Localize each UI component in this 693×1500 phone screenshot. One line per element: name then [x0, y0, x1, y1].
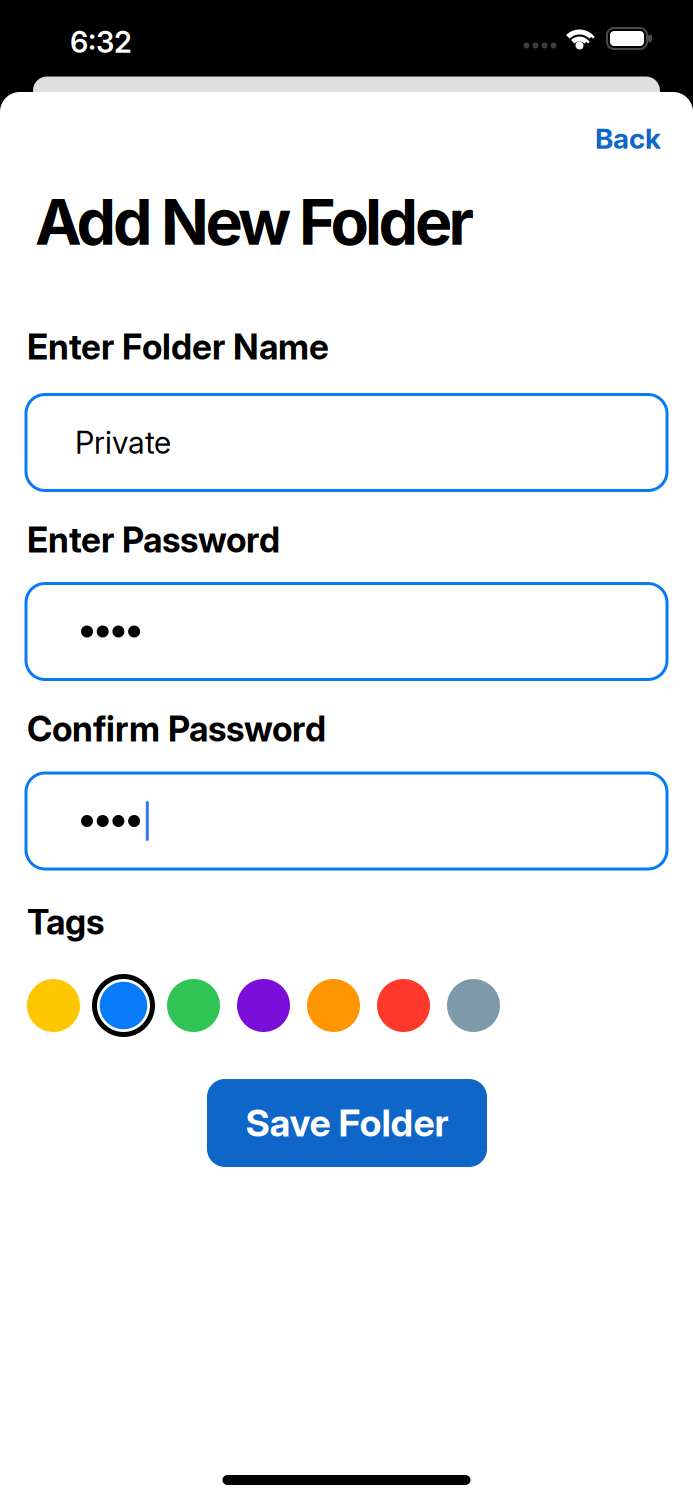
- staticText: Back: [595, 122, 661, 155]
- staticText: Confirm Password: [27, 709, 326, 749]
- button[interactable]: Green tag: [167, 979, 220, 1032]
- staticText: Enter Folder Name: [27, 327, 329, 367]
- button[interactable]: Password text field: [26, 583, 667, 679]
- button[interactable]: Red tag: [377, 979, 430, 1032]
- button[interactable]: Save Folder: [207, 1079, 487, 1167]
- button[interactable]: Orange tag: [307, 979, 360, 1032]
- staticText: 6:32: [70, 25, 132, 59]
- button[interactable]: Folder name text field: [26, 394, 667, 490]
- staticText: Add New Folder: [35, 185, 474, 259]
- staticText: Save Folder: [245, 1101, 448, 1145]
- button[interactable]: Purple tag: [237, 979, 290, 1032]
- button[interactable]: Back: [595, 122, 661, 155]
- button[interactable]: Yellow tag: [27, 979, 80, 1032]
- staticText: Tags: [27, 902, 104, 942]
- staticText: Enter Password: [27, 520, 280, 560]
- staticText: Private: [75, 424, 171, 461]
- button[interactable]: Gray tag: [447, 979, 500, 1032]
- button[interactable]: Confirm password text field: [26, 773, 667, 869]
- button[interactable]: Blue tag: [97, 979, 150, 1032]
